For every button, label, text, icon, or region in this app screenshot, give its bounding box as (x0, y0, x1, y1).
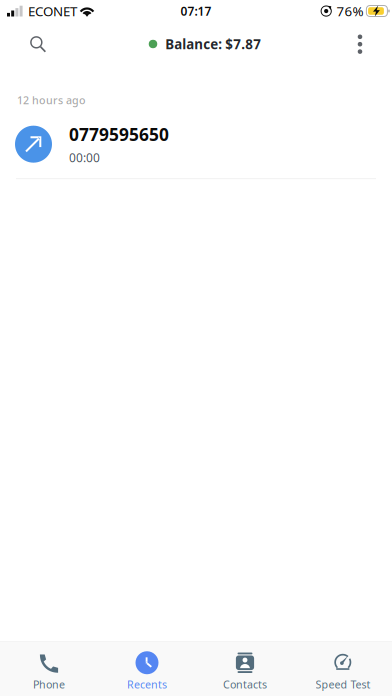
staticText: 07:17 (180, 3, 211, 19)
button[interactable]: Phone (0, 641, 98, 696)
staticText: Contacts (223, 677, 267, 691)
button[interactable]: Speed Test (294, 641, 392, 696)
button[interactable]: Search (16, 22, 60, 66)
staticText: Phone (33, 677, 65, 691)
staticText: 76% (336, 2, 363, 20)
staticText: 0779595650 (69, 123, 169, 146)
staticText: 12 hours ago (17, 93, 86, 107)
staticText: Recents (127, 677, 167, 691)
staticText: Speed Test (315, 677, 370, 691)
staticText: 00:00 (69, 150, 100, 166)
button[interactable]: Recents (98, 641, 196, 696)
button[interactable]: More options (338, 22, 382, 66)
button[interactable]: Contacts (196, 641, 294, 696)
staticText: ECONET (28, 2, 77, 20)
button[interactable]: 0779595650 (0, 110, 392, 179)
staticText: Balance: $7.87 (165, 35, 261, 53)
